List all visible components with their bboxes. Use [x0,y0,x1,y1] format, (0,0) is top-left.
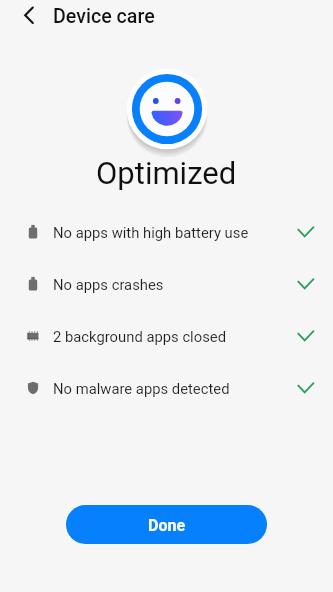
staticText: No apps with high battery use [53,224,249,241]
staticText: Done [148,516,186,535]
staticText: 2 background apps closed [53,328,226,345]
button[interactable]: 2 background apps closed [0,310,333,362]
button[interactable]: No apps crashes [0,258,333,310]
button[interactable]: No apps with high battery use [0,206,333,258]
button[interactable]: Back [14,2,40,28]
staticText: Device care [53,5,155,28]
staticText: No malware apps detected [53,380,230,397]
staticText: Optimized [96,155,237,191]
button[interactable]: No malware apps detected [0,362,333,414]
staticText: No apps crashes [53,276,164,293]
button[interactable]: Done [66,505,267,544]
